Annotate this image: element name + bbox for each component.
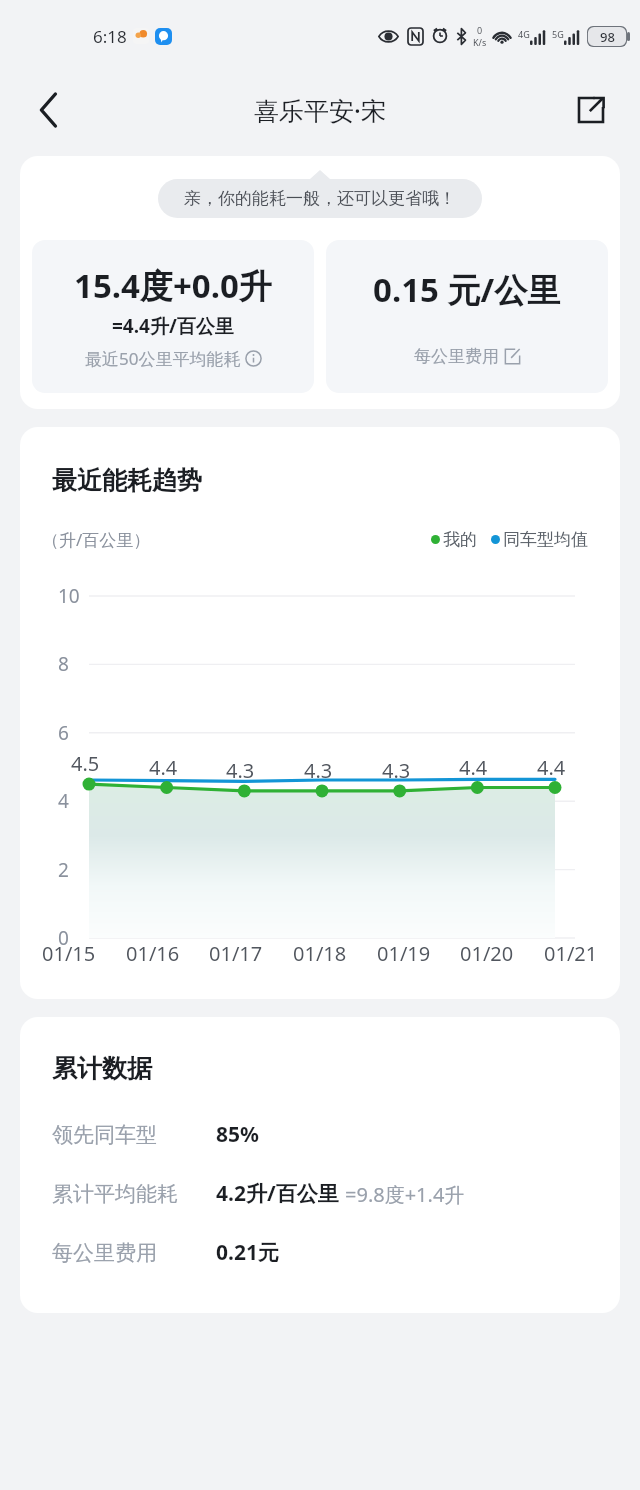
staticText: 6 [58,720,69,746]
staticText: 4.4 [459,754,488,781]
staticText: 每公里费用 [414,346,499,367]
button[interactable]: Back [22,83,76,137]
staticText: 4.4 [537,754,566,781]
staticText: （升/百公里） [42,528,151,551]
button[interactable]: 15.4度+0.0升 [32,240,314,393]
staticText: 喜乐平安·宋 [254,93,386,127]
staticText: 0 [58,925,69,951]
staticText: 4.3 [304,757,333,784]
staticText: 6:18 [93,25,127,48]
staticText: 15.4度+0.0升 [74,263,272,308]
staticText: 4.3 [226,757,255,784]
staticText: 01/18 [293,940,347,967]
staticText: 0.15 元/公里 [373,267,561,312]
staticText: 累计平均能耗 [52,1181,178,1207]
staticText: 01/19 [377,940,431,967]
staticText: 01/17 [209,940,263,967]
staticText: 4.2升/百公里 [216,1179,339,1208]
staticText: K/s [473,36,487,48]
button[interactable]: 0.15 元/公里 [326,240,608,393]
staticText: 0 [477,24,483,36]
staticText: 4 [58,788,69,814]
button[interactable]: Share [564,83,618,137]
staticText: 01/21 [544,940,598,967]
staticText: 4.5 [71,750,100,777]
staticText: 01/16 [126,940,180,967]
staticText: 最近50公里平均能耗 [85,347,241,370]
staticText: 2 [58,857,69,883]
staticText: 85% [216,1120,259,1149]
staticText: 4.3 [382,757,411,784]
staticText: 亲，你的能耗一般，还可以更省哦！ [184,188,456,209]
staticText: 4.4 [149,754,178,781]
staticText: 最近能耗趋势 [52,465,202,496]
staticText: =4.4升/百公里 [112,313,234,339]
staticText: 同车型均值 [503,529,588,550]
staticText: 01/20 [460,940,514,967]
staticText: 我的 [443,529,477,550]
staticText: 每公里费用 [52,1240,157,1266]
staticText: =9.8度+1.4升 [345,1181,465,1208]
staticText: 领先同车型 [52,1122,157,1148]
staticText: 01/15 [42,940,96,967]
staticText: 10 [58,583,80,609]
staticText: 4G [518,28,530,40]
staticText: 累计数据 [52,1053,152,1084]
staticText: 8 [58,651,69,677]
staticText: 0.21元 [216,1238,279,1267]
staticText: 5G [552,28,564,40]
staticText: 98 [600,28,615,46]
